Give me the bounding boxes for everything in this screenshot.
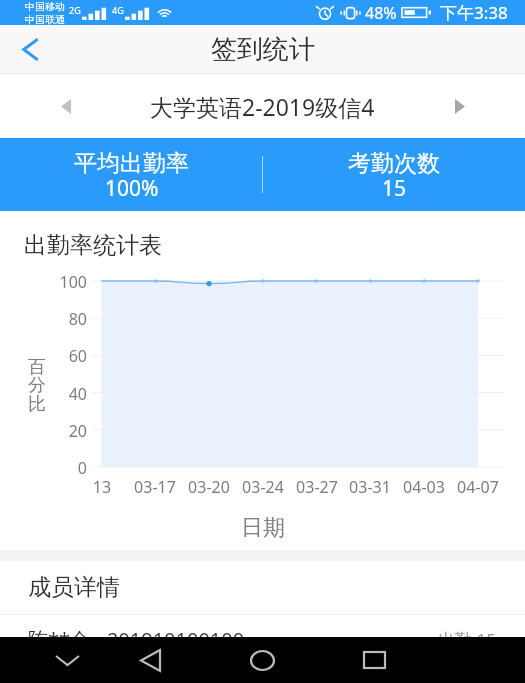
staticText: 出勤:15 bbox=[438, 628, 497, 651]
staticText: 04-07 bbox=[446, 476, 510, 498]
staticText: 0 bbox=[40, 457, 87, 479]
staticText: 分 bbox=[25, 374, 49, 397]
staticText: 04-03 bbox=[392, 476, 456, 498]
staticText: 大学英语2-2019级信4 bbox=[150, 91, 375, 122]
button[interactable]: Back bbox=[0, 25, 60, 73]
button[interactable]: 考勤次数 bbox=[263, 138, 525, 211]
staticText: 15 bbox=[382, 174, 407, 203]
staticText: 80 bbox=[40, 308, 87, 330]
staticText: 03-17 bbox=[123, 476, 187, 498]
staticText: 百 bbox=[25, 356, 49, 379]
staticText: 中国联通 bbox=[25, 13, 65, 25]
button[interactable]: Recent apps bbox=[342, 637, 406, 683]
staticText: 考勤次数 bbox=[348, 149, 440, 178]
staticText: 陈**金 - 201910100100 bbox=[28, 626, 245, 653]
staticText: 100 bbox=[40, 271, 87, 293]
staticText: 03-20 bbox=[177, 476, 241, 498]
staticText: 中国移动 bbox=[25, 0, 65, 13]
staticText: 签到统计 bbox=[211, 33, 315, 66]
staticText: 比 bbox=[25, 393, 49, 416]
staticText: 100% bbox=[105, 174, 159, 203]
button[interactable]: Next class bbox=[425, 74, 495, 138]
button[interactable]: Back bbox=[118, 637, 182, 683]
button[interactable]: 平均出勤率 bbox=[0, 138, 262, 211]
button[interactable]: Home bbox=[230, 637, 294, 683]
staticText: 20 bbox=[40, 420, 87, 442]
staticText: 日期 bbox=[241, 514, 285, 542]
staticText: 平均出勤率 bbox=[74, 149, 189, 178]
staticText: 下午3:38 bbox=[440, 1, 508, 24]
staticText: 03-31 bbox=[338, 476, 402, 498]
staticText: 成员详情 bbox=[28, 573, 120, 602]
staticText: 出勤率统计表 bbox=[24, 231, 162, 260]
staticText: 40 bbox=[40, 383, 87, 405]
button[interactable]: 陈**金 - 201910100100 bbox=[0, 615, 525, 663]
button[interactable]: Hide keyboard bbox=[35, 637, 99, 683]
staticText: 13 bbox=[70, 476, 134, 498]
staticText: 4G bbox=[112, 4, 124, 16]
staticText: 60 bbox=[40, 345, 87, 367]
staticText: 03-24 bbox=[231, 476, 295, 498]
button[interactable]: Previous class bbox=[31, 74, 101, 138]
staticText: 2G bbox=[69, 4, 81, 16]
staticText: 03-27 bbox=[285, 476, 349, 498]
staticText: 48% bbox=[365, 2, 397, 24]
